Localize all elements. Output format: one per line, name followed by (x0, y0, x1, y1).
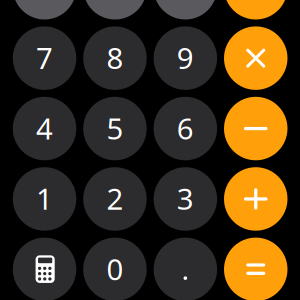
button[interactable]: 6 (154, 97, 217, 160)
staticText: 7 (36, 38, 53, 77)
button[interactable]: Plus Minus (83, 0, 147, 19)
button[interactable]: Tip Calculator (13, 238, 76, 300)
button[interactable]: 1 (13, 167, 76, 231)
staticText: 1 (36, 179, 53, 218)
button[interactable]: 4 (13, 97, 76, 160)
button[interactable]: Percent (154, 0, 217, 19)
staticText: 5 (106, 109, 123, 148)
staticText: 2 (106, 179, 123, 218)
button[interactable]: Subtract (224, 97, 287, 160)
button[interactable]: Add (224, 167, 287, 231)
button[interactable]: Divide (224, 0, 287, 19)
button[interactable]: 5 (83, 97, 147, 160)
staticText: 3 (177, 179, 194, 218)
button[interactable]: 0 (83, 238, 147, 300)
button[interactable]: 9 (154, 26, 217, 90)
staticText: 8 (106, 38, 123, 77)
button[interactable]: 2 (83, 167, 147, 231)
button[interactable]: All Clear (13, 0, 76, 19)
button[interactable]: 3 (154, 167, 217, 231)
staticText: 4 (36, 109, 53, 148)
button[interactable]: Equals (224, 238, 287, 300)
button[interactable]: 7 (13, 26, 76, 90)
staticText: 9 (177, 38, 194, 77)
staticText: 0 (106, 249, 123, 288)
button[interactable]: Multiply (224, 26, 287, 90)
button[interactable]: Decimal Point (154, 238, 217, 300)
staticText: 6 (177, 109, 194, 148)
button[interactable]: 8 (83, 26, 147, 90)
